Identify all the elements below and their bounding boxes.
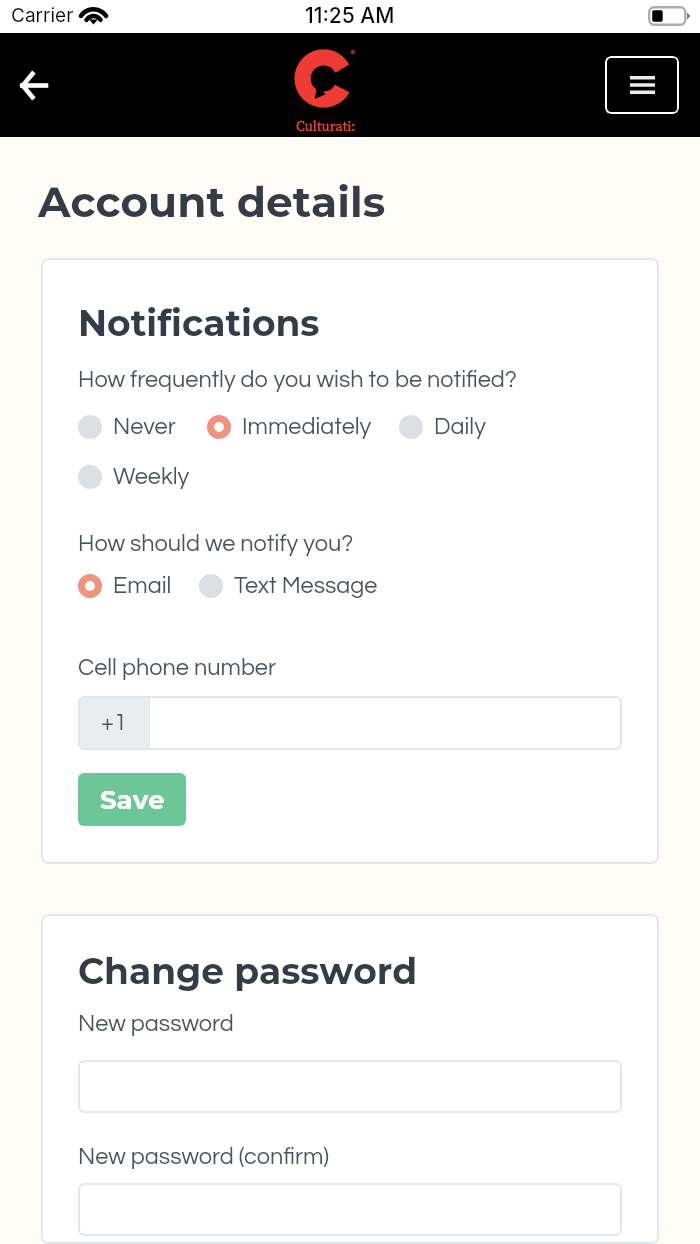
staticText: New password (confirm) xyxy=(78,1145,329,1169)
staticText: Email xyxy=(113,574,172,598)
staticText: +1 xyxy=(101,711,127,735)
staticText: 11:25 AM xyxy=(305,3,395,28)
button[interactable]: Menu xyxy=(605,56,679,114)
staticText: Carrier xyxy=(11,4,74,27)
button[interactable]: Email xyxy=(78,574,172,598)
staticText: Change password xyxy=(78,949,418,993)
button[interactable]: +1 xyxy=(78,696,622,750)
button[interactable]: Save xyxy=(78,773,186,826)
staticText: Culturati: xyxy=(296,116,356,135)
button[interactable]: Daily xyxy=(399,415,486,439)
button[interactable]: Weekly xyxy=(78,465,190,489)
button[interactable] xyxy=(78,1060,622,1113)
button[interactable] xyxy=(78,1183,622,1236)
staticText: Account details xyxy=(38,176,386,228)
button[interactable]: Immediately xyxy=(207,415,372,439)
staticText: Immediately xyxy=(242,415,372,439)
staticText: Notifications xyxy=(78,301,320,345)
staticText: Never xyxy=(113,415,176,439)
staticText: New password xyxy=(78,1012,234,1036)
button[interactable]: Back xyxy=(7,59,59,111)
staticText: Text Message xyxy=(234,574,378,598)
staticText: Daily xyxy=(434,415,486,439)
button[interactable]: Text Message xyxy=(199,574,378,598)
button[interactable]: Never xyxy=(78,415,176,439)
staticText: Save xyxy=(100,784,165,816)
staticText: How frequently do you wish to be notifie… xyxy=(78,368,517,392)
staticText: How should we notify you? xyxy=(78,532,354,556)
staticText: Cell phone number xyxy=(78,656,277,680)
staticText: Weekly xyxy=(113,465,190,489)
